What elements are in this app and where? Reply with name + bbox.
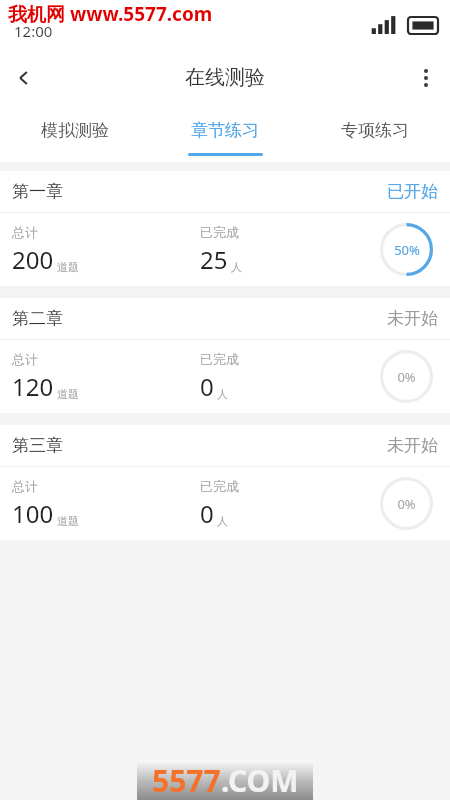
button[interactable]: 第三章 [0,425,450,540]
button[interactable]: 第一章 [0,171,450,286]
staticText: 50% [394,241,420,259]
staticText: 道题 [57,260,79,274]
button[interactable]: 模拟测验 [0,105,150,162]
staticText: 未开始 [387,308,438,329]
staticText: 在线测验 [185,65,265,90]
staticText: 第二章 [12,308,63,329]
staticText: 模拟测验 [41,120,109,141]
button[interactable]: More options [402,54,450,102]
staticText: 专项练习 [341,120,409,141]
staticText: 第一章 [12,181,63,202]
staticText: 0 [200,370,214,403]
staticText: 章节练习 [191,120,259,141]
staticText: 12:00 [14,21,53,41]
staticText: 25 [200,243,228,276]
staticText: 我机网 www.5577.com [8,1,213,27]
staticText: .COM [221,760,299,800]
staticText: 已完成 [200,478,239,494]
staticText: 5577 [152,760,221,800]
button[interactable]: 专项练习 [300,105,450,162]
staticText: 人 [231,260,242,274]
staticText: 0% [397,495,416,513]
staticText: 0 [200,497,214,530]
button[interactable]: Back [0,54,48,102]
staticText: 人 [217,514,228,528]
staticText: 总计 [12,478,38,494]
staticText: 人 [217,387,228,401]
staticText: 总计 [12,224,38,240]
staticText: 已完成 [200,351,239,367]
staticText: 道题 [57,514,79,528]
staticText: 未开始 [387,435,438,456]
staticText: 100 [12,497,54,530]
button[interactable]: 第二章 [0,298,450,413]
staticText: 道题 [57,387,79,401]
staticText: 总计 [12,351,38,367]
staticText: 已开始 [387,181,438,202]
staticText: 120 [12,370,54,403]
button[interactable]: 章节练习 [150,105,300,162]
staticText: 第三章 [12,435,63,456]
staticText: 已完成 [200,224,239,240]
staticText: 0% [397,368,416,386]
staticText: 200 [12,243,54,276]
